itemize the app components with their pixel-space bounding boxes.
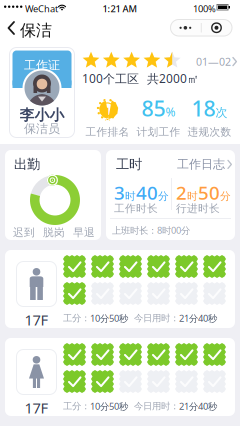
staticText: 10分50秒 bbox=[90, 312, 128, 324]
button[interactable]: 17F bbox=[5, 250, 235, 328]
staticText: 17F bbox=[24, 398, 48, 417]
staticText: 分 bbox=[158, 189, 169, 203]
staticText: 次 bbox=[215, 105, 227, 120]
staticText: 01—02 bbox=[196, 54, 231, 69]
button[interactable]: 保洁 bbox=[0, 14, 60, 44]
staticText: 2 bbox=[176, 180, 187, 205]
staticText: 21分40秒 bbox=[179, 400, 217, 412]
button[interactable]: 工作证 bbox=[9, 47, 75, 138]
button[interactable]: 工作日志 bbox=[177, 157, 233, 172]
staticText: 工分： bbox=[63, 400, 90, 412]
button[interactable]: 出勤 bbox=[5, 150, 101, 240]
staticText: 1:21 AM bbox=[102, 2, 137, 15]
staticText: 行进时长 bbox=[176, 202, 220, 215]
staticText: 3 bbox=[114, 180, 125, 205]
staticText: 保洁 bbox=[20, 20, 52, 40]
staticText: 10分50秒 bbox=[90, 400, 128, 412]
staticText: % bbox=[165, 104, 175, 120]
staticText: 计划工作 bbox=[136, 125, 180, 138]
staticText: 17F bbox=[24, 310, 48, 329]
staticText: 脱岗 bbox=[43, 226, 65, 239]
staticText: 100个工区 共2000㎡ bbox=[82, 70, 199, 86]
staticText: 50 bbox=[198, 180, 220, 205]
button[interactable] bbox=[170, 19, 232, 36]
staticText: 违规次数 bbox=[187, 125, 231, 138]
staticText: 出勤 bbox=[14, 156, 40, 172]
staticText: 工作时长 bbox=[114, 202, 158, 215]
button[interactable]: 工时 bbox=[106, 150, 235, 240]
staticText: 工分： bbox=[63, 312, 90, 324]
staticText: 保洁员 bbox=[24, 121, 60, 136]
staticText: 李小小 bbox=[19, 106, 64, 124]
button[interactable]: 01—02 bbox=[196, 54, 238, 69]
staticText: 21分40秒 bbox=[179, 312, 217, 324]
button[interactable]: 17F bbox=[5, 338, 235, 416]
staticText: 上班时长：8时00分 bbox=[112, 224, 190, 236]
staticText: 18 bbox=[191, 94, 215, 122]
staticText: 工作日志 bbox=[177, 157, 225, 172]
staticText: 时 bbox=[187, 189, 198, 203]
staticText: 早退 bbox=[73, 226, 95, 239]
staticText: 工时 bbox=[116, 156, 142, 172]
staticText: 今日用时： bbox=[128, 400, 179, 412]
staticText: 迟到 bbox=[13, 226, 35, 239]
staticText: 今日用时： bbox=[128, 312, 179, 324]
staticText: WeChat bbox=[25, 2, 58, 15]
staticText: 分 bbox=[220, 189, 231, 203]
staticText: 工作排名 bbox=[85, 125, 129, 138]
staticText: 100% bbox=[193, 2, 216, 15]
staticText: 时 bbox=[125, 189, 136, 203]
staticText: 工作证 bbox=[24, 58, 60, 73]
staticText: 40 bbox=[136, 180, 158, 205]
staticText: 1 bbox=[103, 103, 111, 120]
staticText: 85 bbox=[141, 94, 165, 122]
